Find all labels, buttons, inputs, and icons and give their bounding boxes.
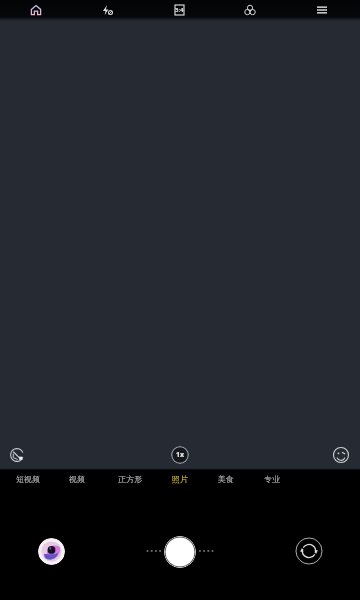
button[interactable]: Beauty effects [328, 442, 354, 468]
staticText: 3:4 [175, 6, 184, 14]
staticText: 照片 [172, 474, 188, 484]
button[interactable]: Switch camera [295, 537, 323, 565]
button[interactable]: 正方形 [115, 471, 145, 487]
button[interactable]: 1x [171, 446, 189, 464]
staticText: 专业 [264, 474, 280, 484]
staticText: 正方形 [118, 474, 142, 484]
button[interactable]: 美食 [215, 471, 237, 487]
button[interactable]: Home [22, 0, 50, 21]
button[interactable]: Flash off [94, 0, 122, 21]
staticText: 视频 [69, 474, 85, 484]
staticText: 美食 [218, 474, 234, 484]
button[interactable]: Beauty off [4, 442, 30, 468]
staticText: 1x [176, 450, 185, 460]
button[interactable]: 短视频 [13, 471, 43, 487]
staticText: 短视频 [16, 474, 40, 484]
button[interactable]: 专业 [261, 471, 283, 487]
button[interactable]: Take photo [164, 536, 196, 568]
button[interactable]: 视频 [66, 471, 88, 487]
button[interactable]: Aspect ratio 3 by 4 [165, 0, 193, 21]
button[interactable]: Menu [308, 0, 336, 21]
button[interactable]: 照片 [169, 471, 191, 487]
button[interactable]: Gallery [38, 538, 65, 565]
button[interactable]: Filters [236, 0, 264, 21]
